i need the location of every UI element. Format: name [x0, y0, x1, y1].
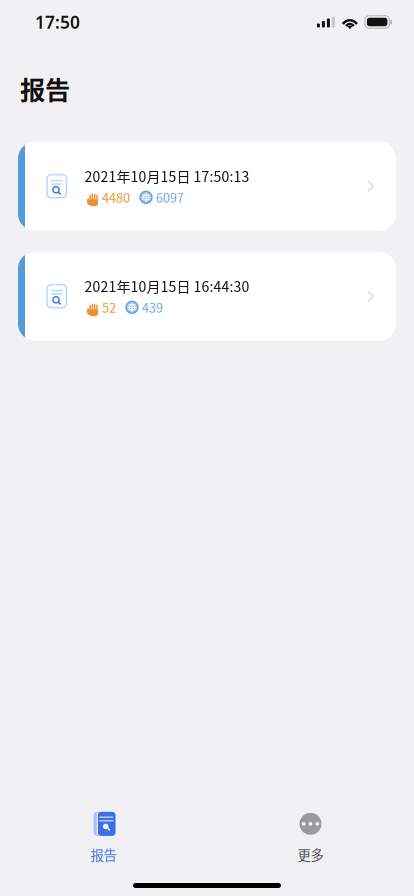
staticText: 6097 [156, 188, 184, 206]
staticText: 报告 [90, 845, 116, 864]
staticText: 4480 [102, 188, 130, 206]
staticText: 439 [142, 298, 163, 316]
staticText: 52 [102, 298, 116, 316]
staticText: 更多 [297, 845, 323, 864]
button[interactable]: 2021年10月15日 16:44:30 [18, 252, 396, 341]
button[interactable]: 更多 [207, 812, 414, 864]
staticText: 2021年10月15日 16:44:30 [84, 276, 249, 296]
button[interactable]: 2021年10月15日 17:50:13 [18, 142, 396, 231]
staticText: 17:50 [35, 10, 80, 33]
button[interactable]: 报告 [0, 812, 207, 864]
staticText: 报告 [20, 70, 70, 107]
staticText: 2021年10月15日 17:50:13 [84, 166, 249, 186]
